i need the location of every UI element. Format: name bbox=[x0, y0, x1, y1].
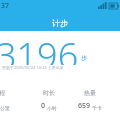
button[interactable]: 里程 bbox=[0, 89, 14, 111]
button[interactable]: 热量 bbox=[68, 89, 112, 111]
staticText: 公里 bbox=[0, 105, 10, 111]
staticText: 计步 bbox=[52, 18, 68, 28]
staticText: 659 bbox=[78, 101, 91, 111]
staticText: 更新于2025/05/24 14:22 上层记录 bbox=[2, 65, 64, 70]
staticText: 千卡 bbox=[92, 105, 102, 111]
staticText: 时长 bbox=[43, 89, 55, 97]
staticText: 里程 bbox=[0, 89, 5, 97]
button[interactable]: 时长 bbox=[30, 89, 68, 111]
staticText: 小时 bbox=[47, 105, 57, 111]
other: Signal strength bbox=[98, 2, 107, 9]
staticText: 37 bbox=[1, 1, 10, 11]
staticText: 3196 bbox=[0, 31, 79, 65]
staticText: 热量 bbox=[84, 89, 96, 97]
other: Battery bbox=[109, 3, 119, 9]
staticText: 步 bbox=[81, 54, 87, 62]
staticText: 0 bbox=[41, 101, 46, 111]
